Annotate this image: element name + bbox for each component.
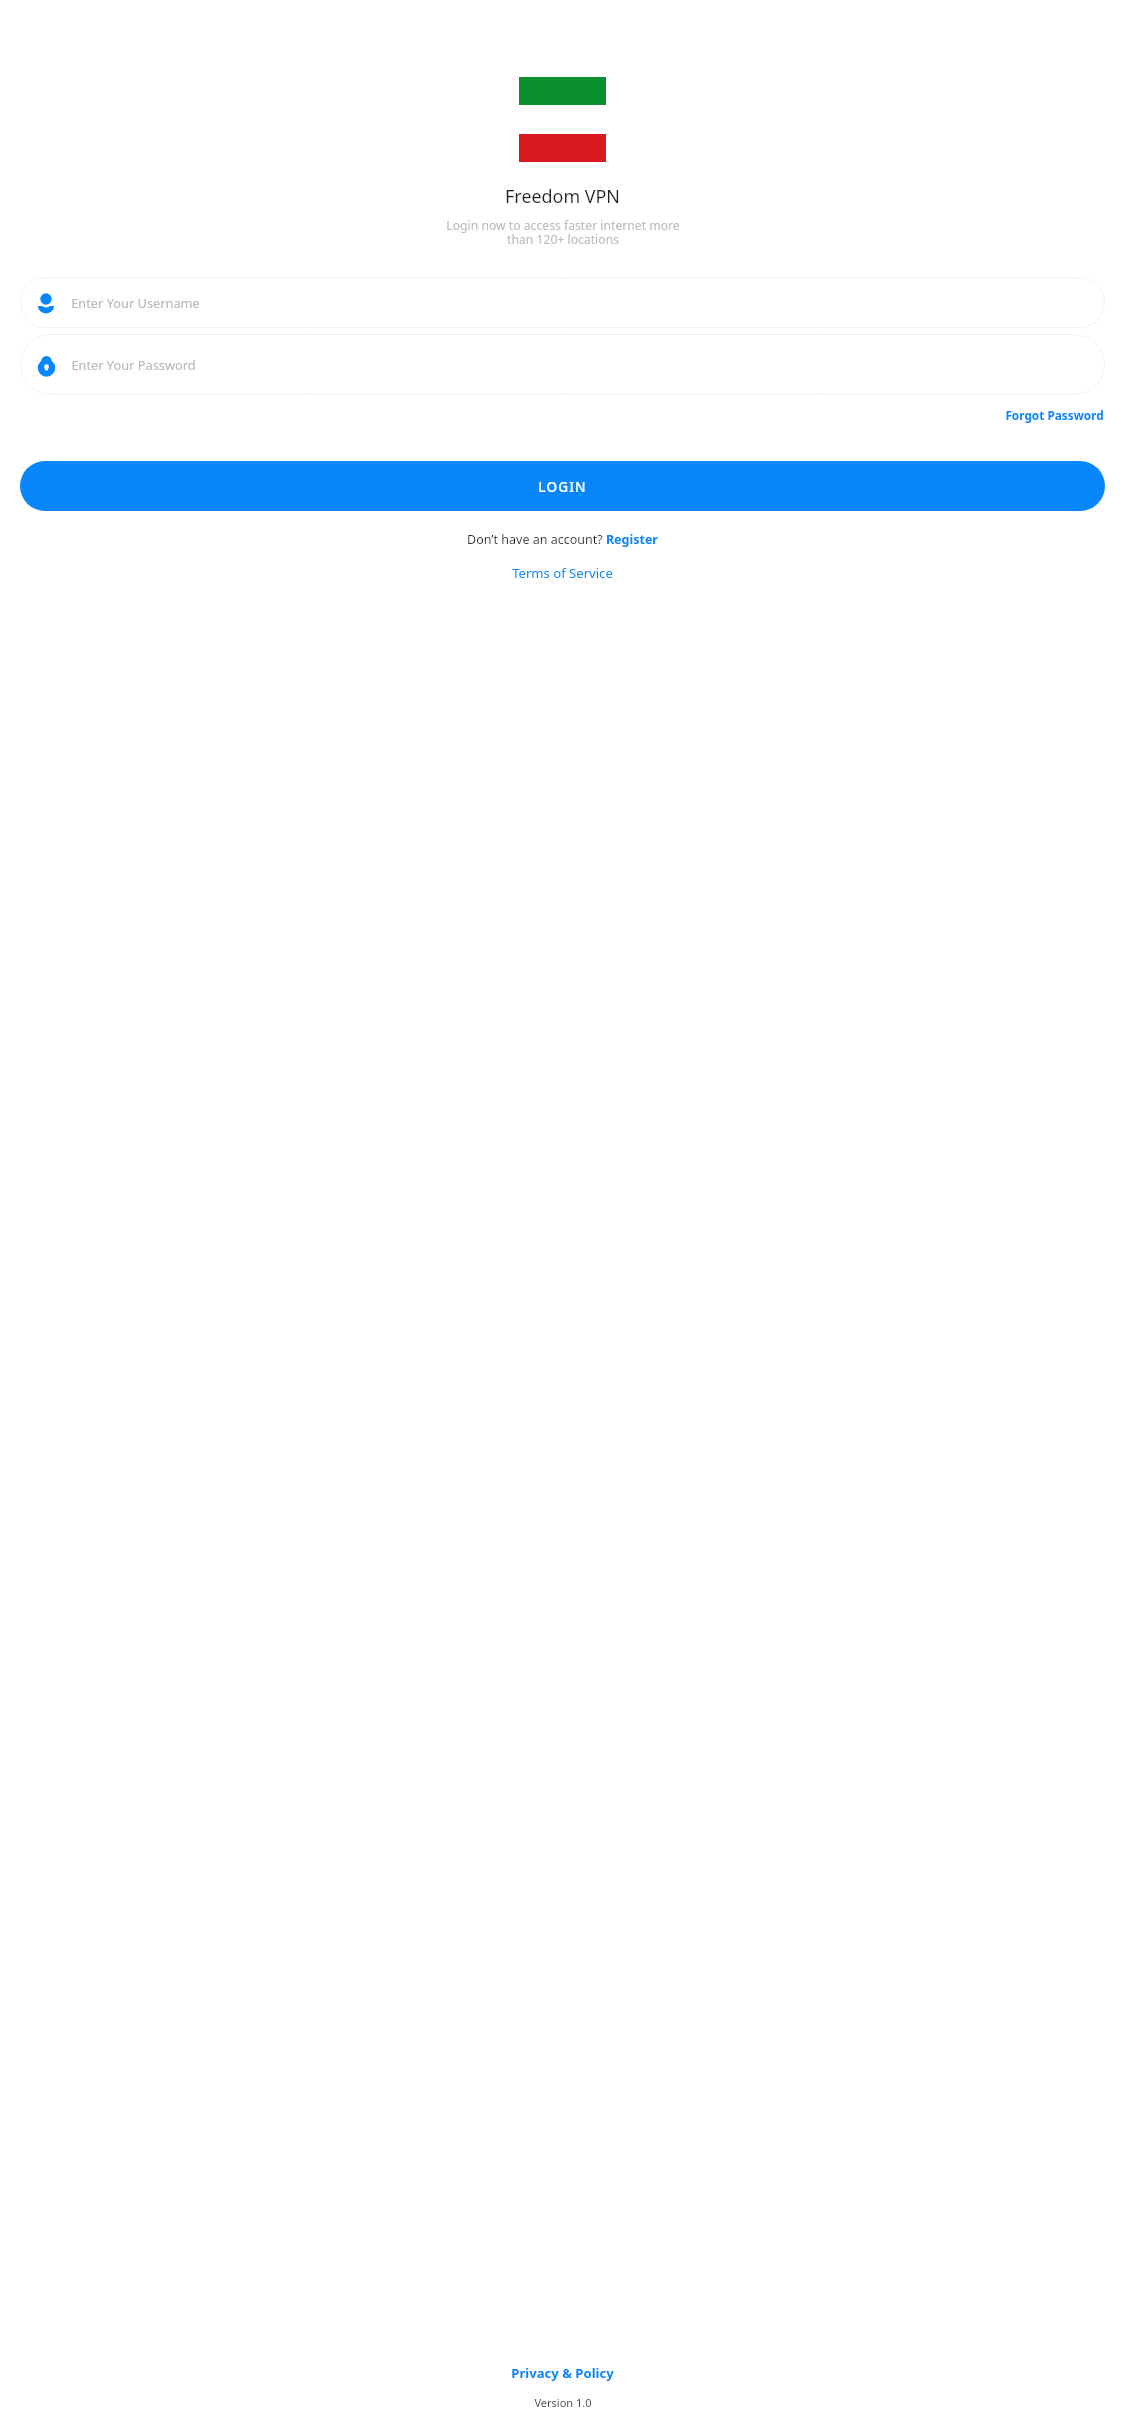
staticText: Terms of Service bbox=[512, 564, 613, 582]
button[interactable]: Privacy & Policy bbox=[503, 2360, 622, 2386]
staticText: Enter Your Password bbox=[71, 356, 196, 373]
staticText: Version 1.0 bbox=[534, 2395, 592, 2410]
button[interactable]: Forgot Password bbox=[1003, 405, 1106, 425]
staticText: Forgot Password bbox=[1005, 407, 1104, 423]
staticText: Login now to access faster internet more… bbox=[446, 217, 680, 248]
other: Password bbox=[36, 355, 57, 376]
other: Username bbox=[36, 293, 56, 313]
button[interactable]: Password bbox=[20, 334, 1105, 395]
staticText: Freedom VPN bbox=[505, 184, 620, 208]
staticText: Enter Your Username bbox=[71, 294, 200, 311]
button[interactable]: Don’t have an account? Register bbox=[461, 528, 664, 551]
staticText: LOGIN bbox=[538, 477, 587, 496]
button[interactable]: Terms of Service bbox=[504, 560, 621, 586]
button[interactable]: Username bbox=[20, 277, 1105, 328]
staticText: Privacy & Policy bbox=[511, 2364, 614, 2382]
button[interactable]: LOGIN bbox=[20, 461, 1105, 511]
staticText: Don’t have an account? Register bbox=[467, 531, 658, 548]
